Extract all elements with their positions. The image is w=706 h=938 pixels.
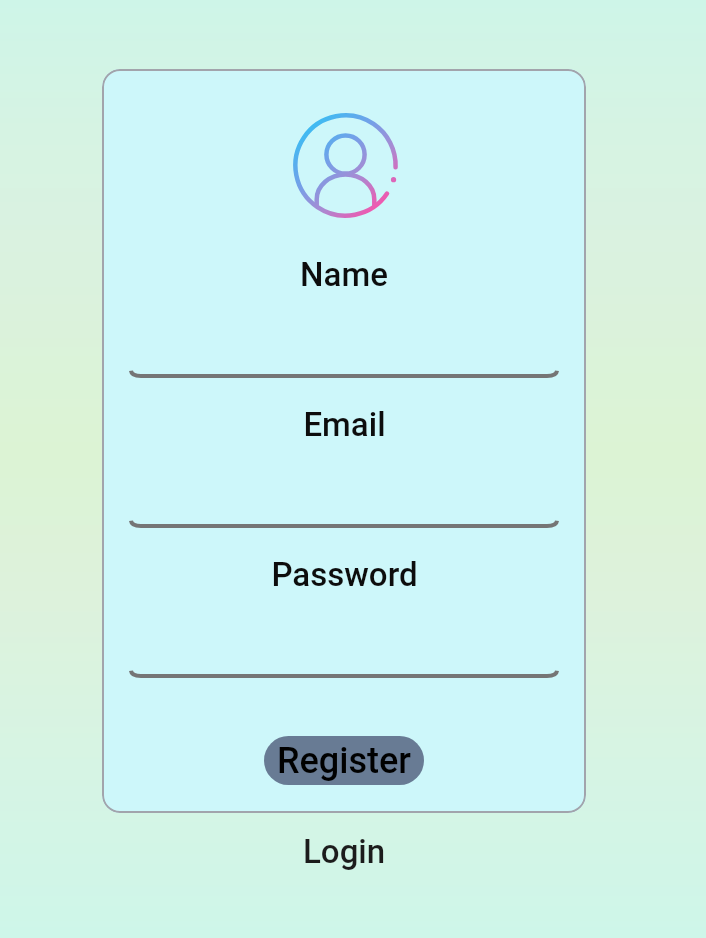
button[interactable]: Profile picture [293, 113, 398, 218]
button[interactable]: Login [244, 826, 444, 876]
button[interactable]: Email [130, 390, 558, 530]
button[interactable]: Register [264, 736, 424, 785]
staticText: Password [271, 555, 418, 594]
button[interactable]: Password [130, 540, 558, 680]
staticText: Name [300, 255, 388, 294]
staticText: Login [303, 832, 386, 871]
button[interactable]: Name [130, 240, 558, 380]
staticText: Register [277, 740, 411, 782]
staticText: Email [303, 405, 386, 444]
